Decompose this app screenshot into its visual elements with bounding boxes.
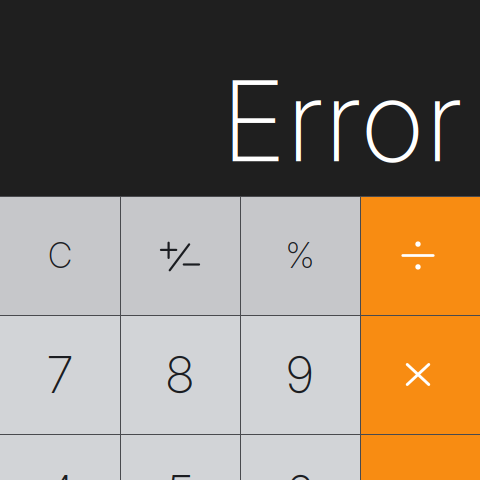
button[interactable]: 9 xyxy=(240,315,360,434)
button[interactable]: 8 xyxy=(120,315,240,434)
staticText: % xyxy=(285,234,314,276)
button[interactable]: % xyxy=(240,196,360,315)
staticText: 8 xyxy=(164,344,195,405)
staticText: 9 xyxy=(285,344,315,405)
staticText: 4 xyxy=(44,463,75,480)
button[interactable]: 6 xyxy=(240,434,360,480)
button[interactable]: 4 xyxy=(0,434,120,480)
button[interactable]: Plus minus xyxy=(120,196,240,315)
button[interactable]: 5 xyxy=(120,434,240,480)
staticText: C xyxy=(48,234,72,276)
staticText: 6 xyxy=(285,463,315,480)
staticText: 5 xyxy=(165,463,194,480)
button[interactable]: 7 xyxy=(0,315,120,434)
button[interactable]: Divide xyxy=(360,196,480,315)
button[interactable]: C xyxy=(0,196,120,315)
button[interactable]: Minus xyxy=(360,434,480,480)
staticText: 7 xyxy=(46,344,74,405)
staticText: Error xyxy=(221,54,463,188)
button[interactable]: Multiply xyxy=(360,315,480,434)
